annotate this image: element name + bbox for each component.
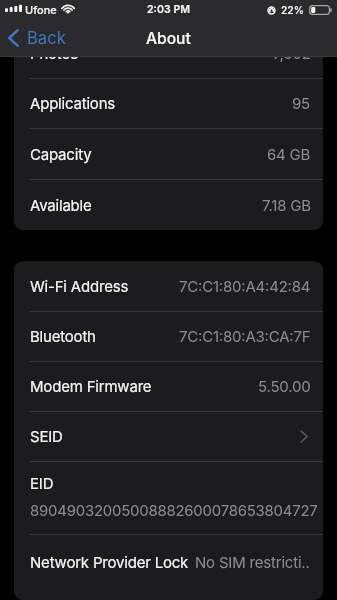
staticText: Available (30, 196, 92, 214)
button[interactable]: Applications (14, 78, 323, 128)
staticText: Applications (30, 94, 116, 112)
staticText: Ufone (25, 3, 57, 16)
button[interactable]: Modem Firmware (14, 361, 323, 411)
button[interactable]: Bluetooth (14, 311, 323, 361)
staticText: About (146, 29, 191, 48)
button[interactable]: Network Provider Lock (14, 534, 323, 589)
staticText: SEID (30, 427, 63, 445)
button[interactable]: Wi-Fi Address (14, 261, 323, 311)
staticText: Capacity (30, 145, 92, 163)
staticText: Bluetooth (30, 327, 96, 345)
staticText: 89049032005008882600078653804727 (30, 502, 318, 520)
staticText: 5.50.00 (258, 377, 311, 395)
staticText: 2:03 PM (147, 3, 190, 16)
staticText: No SIM restricti… (195, 553, 311, 571)
button[interactable]: Back (0, 23, 76, 53)
button[interactable]: Available (14, 179, 323, 230)
staticText: 64 GB (267, 145, 311, 163)
staticText: 7C:C1:80:A4:42:84 (179, 277, 311, 295)
staticText: Wi-Fi Address (30, 277, 129, 295)
staticText: EID (30, 474, 54, 492)
staticText: Photos (30, 44, 78, 62)
staticText: 7.18 GB (262, 196, 311, 214)
button[interactable]: SEID (14, 411, 323, 461)
staticText: Modem Firmware (30, 377, 152, 395)
button[interactable]: Capacity (14, 128, 323, 179)
other: Back (8, 29, 19, 47)
staticText: Network Provider Lock (30, 553, 189, 571)
button[interactable]: Photos (14, 27, 323, 78)
staticText: 22% (281, 4, 304, 16)
staticText: Back (27, 28, 66, 48)
other: Open SEID details (300, 430, 308, 443)
staticText: 7C:C1:80:A3:CA:7F (179, 327, 311, 345)
staticText: 7,002 (273, 44, 311, 62)
button[interactable]: EID (14, 461, 323, 534)
staticText: 95 (292, 94, 311, 112)
